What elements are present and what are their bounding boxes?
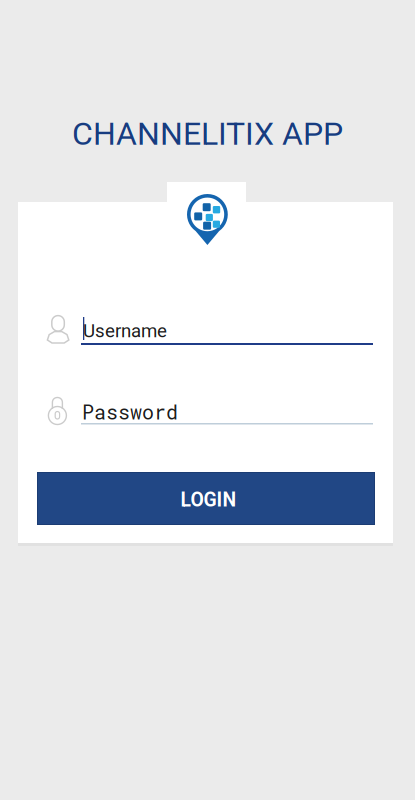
staticText: Username [83,320,167,342]
button[interactable]: Username [37,307,375,355]
staticText: CHANNELITIX APP [72,115,343,152]
staticText: Password [82,398,178,425]
button[interactable]: Password [37,389,375,437]
staticText: LOGIN [180,489,236,511]
button[interactable]: LOGIN [37,472,375,525]
